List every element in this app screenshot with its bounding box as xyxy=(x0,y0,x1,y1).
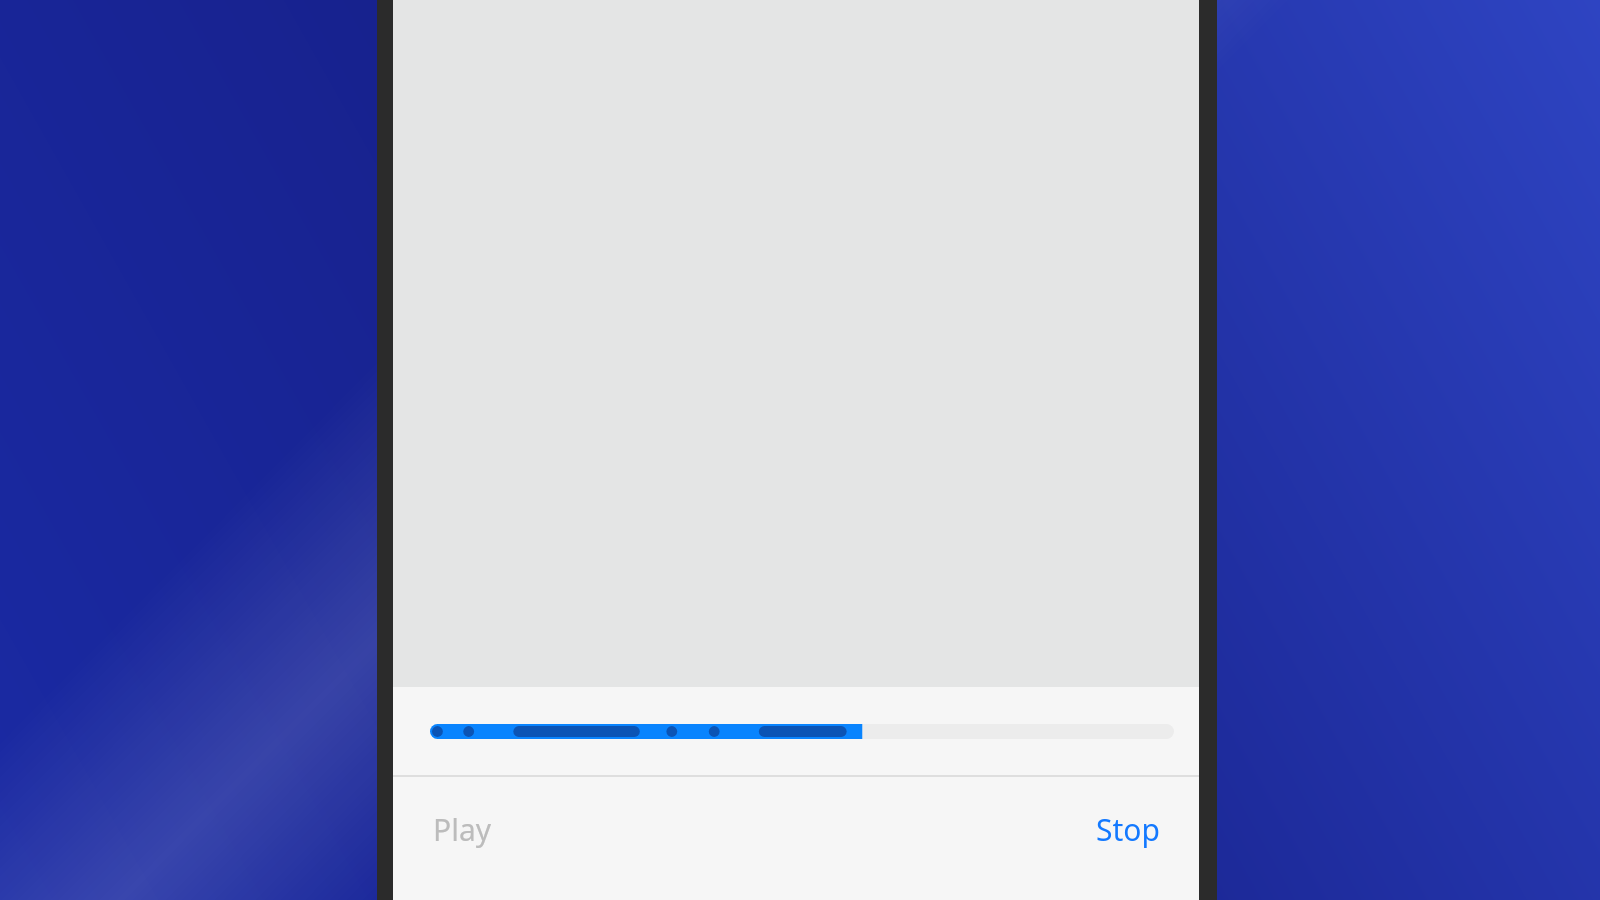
staticText: Play xyxy=(433,809,492,850)
button[interactable]: Play xyxy=(393,799,512,864)
button[interactable]: Playback position xyxy=(430,724,1174,739)
staticText: Stop xyxy=(1096,809,1160,850)
button[interactable]: Stop xyxy=(1076,799,1199,864)
